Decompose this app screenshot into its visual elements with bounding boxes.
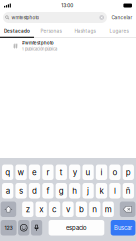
- staticText: Cancelar: [111, 15, 132, 20]
- staticText: e: [32, 167, 37, 177]
- button[interactable]: Borrar: [120, 201, 135, 217]
- staticText: i: [100, 167, 102, 177]
- staticText: u: [86, 167, 91, 177]
- button[interactable]: c: [49, 201, 60, 217]
- staticText: j: [87, 186, 89, 196]
- button[interactable]: Números: [1, 220, 17, 235]
- staticText: 123: [5, 224, 13, 231]
- staticText: v: [66, 204, 70, 214]
- button[interactable]: x: [36, 201, 47, 217]
- button[interactable]: u: [82, 164, 94, 180]
- button[interactable]: j: [82, 183, 94, 198]
- staticText: a: [6, 186, 10, 196]
- staticText: 1 publicación pública: [22, 47, 57, 51]
- button[interactable]: v: [62, 201, 74, 217]
- staticText: w: [18, 167, 25, 177]
- staticText: Hashtags: [74, 28, 95, 34]
- button[interactable]: r: [42, 164, 54, 180]
- button[interactable]: d: [29, 183, 40, 198]
- staticText: x: [39, 204, 43, 214]
- button[interactable]: Emoji: [18, 220, 29, 235]
- staticText: n: [92, 204, 97, 214]
- button[interactable]: p: [123, 164, 134, 180]
- staticText: t: [60, 167, 63, 177]
- staticText: q: [5, 167, 10, 177]
- staticText: Personas: [40, 28, 61, 34]
- button[interactable]: k: [96, 183, 107, 198]
- staticText: m: [105, 204, 112, 214]
- button[interactable]: Hashtags: [68, 24, 102, 38]
- staticText: 13:00: [61, 3, 73, 8]
- staticText: wmtestphoto: [11, 15, 39, 20]
- button[interactable]: l: [109, 183, 121, 198]
- button[interactable]: Cancelar: [111, 12, 133, 23]
- button[interactable]: w: [15, 164, 27, 180]
- staticText: r: [46, 167, 49, 177]
- button[interactable]: Mayúsculas: [1, 201, 16, 217]
- button[interactable]: b: [76, 201, 87, 217]
- staticText: h: [72, 186, 77, 196]
- staticText: o: [112, 167, 117, 177]
- button[interactable]: #wmtestphoto: [0, 38, 136, 54]
- button[interactable]: i: [96, 164, 107, 180]
- staticText: l: [114, 186, 116, 196]
- button[interactable]: Personas: [34, 24, 68, 38]
- button[interactable]: Dictado: [31, 220, 42, 235]
- button[interactable]: h: [69, 183, 80, 198]
- button[interactable]: Lugares: [102, 24, 136, 38]
- staticText: y: [73, 167, 77, 177]
- staticText: p: [126, 167, 131, 177]
- staticText: d: [32, 186, 37, 196]
- staticText: #wmtestphoto: [22, 40, 54, 46]
- staticText: ñ: [126, 186, 131, 196]
- button[interactable]: e: [29, 164, 40, 180]
- button[interactable]: Destacado: [0, 24, 34, 38]
- button[interactable]: ñ: [123, 183, 134, 198]
- staticText: Lugares: [109, 28, 128, 34]
- staticText: Buscar: [114, 224, 132, 231]
- button[interactable]: t: [56, 164, 67, 180]
- button[interactable]: m: [103, 201, 114, 217]
- staticText: s: [19, 186, 23, 196]
- button[interactable]: q: [2, 164, 13, 180]
- staticText: espacio: [66, 224, 87, 231]
- button[interactable]: a: [2, 183, 13, 198]
- staticText: b: [79, 204, 84, 214]
- staticText: Destacado: [4, 28, 30, 34]
- staticText: f: [46, 186, 49, 196]
- button[interactable]: g: [56, 183, 67, 198]
- button[interactable]: n: [89, 201, 100, 217]
- staticText: c: [52, 204, 57, 214]
- button[interactable]: z: [22, 201, 33, 217]
- button[interactable]: f: [42, 183, 54, 198]
- button[interactable]: espacio: [49, 220, 104, 235]
- button[interactable]: y: [69, 164, 80, 180]
- button[interactable]: Buscar: [111, 220, 135, 235]
- button[interactable]: o: [109, 164, 121, 180]
- staticText: k: [99, 186, 103, 196]
- staticText: g: [59, 186, 64, 196]
- button[interactable]: s: [15, 183, 27, 198]
- staticText: z: [26, 204, 30, 214]
